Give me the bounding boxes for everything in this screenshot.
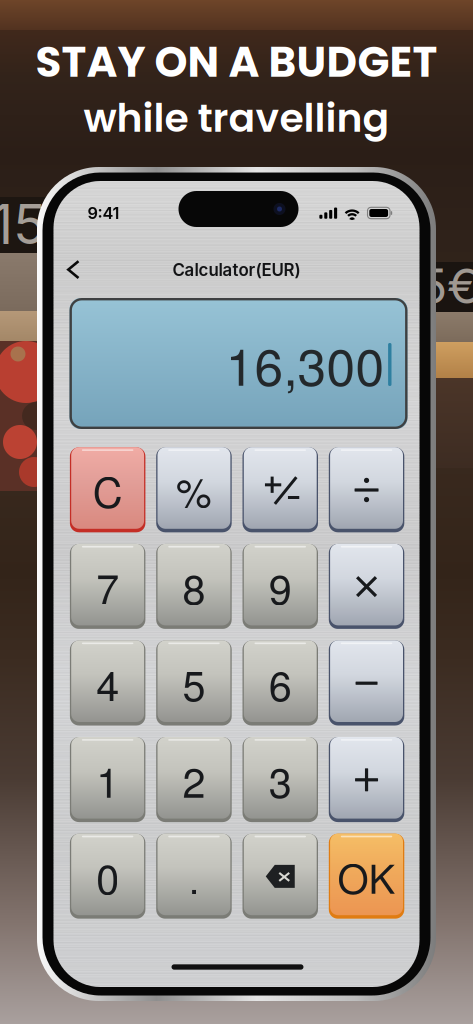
button[interactable]: Decimal point bbox=[156, 833, 232, 918]
staticText: 16,300 bbox=[226, 327, 385, 400]
staticText: Calculator(EUR) bbox=[172, 260, 300, 280]
button[interactable]: One bbox=[70, 736, 145, 821]
staticText: 7 bbox=[96, 557, 119, 616]
button[interactable]: Zero bbox=[70, 833, 145, 918]
button[interactable]: Seven bbox=[70, 543, 145, 628]
staticText: 4 bbox=[96, 654, 119, 713]
button[interactable]: Six bbox=[242, 640, 318, 725]
button[interactable]: OK bbox=[329, 833, 404, 918]
button[interactable]: Back bbox=[53, 249, 93, 291]
staticText: 8 bbox=[182, 557, 205, 616]
button[interactable]: Plus minus bbox=[242, 446, 318, 531]
staticText: 2 bbox=[182, 750, 205, 809]
staticText: 5 bbox=[182, 654, 205, 713]
staticText: 6 bbox=[269, 654, 292, 713]
staticText: 1 bbox=[96, 750, 119, 809]
button[interactable]: Clear bbox=[70, 446, 145, 531]
button[interactable]: Nine bbox=[242, 543, 318, 628]
button[interactable]: Four bbox=[70, 640, 145, 725]
button[interactable]: Five bbox=[156, 640, 232, 725]
staticText: 5€ bbox=[418, 257, 473, 315]
button[interactable]: Divide bbox=[329, 446, 404, 531]
staticText: while travelling bbox=[83, 90, 389, 146]
button[interactable]: Three bbox=[242, 736, 318, 821]
staticText: OK bbox=[337, 848, 395, 905]
staticText: 15 bbox=[0, 191, 46, 257]
staticText: 9:41 bbox=[87, 203, 119, 223]
staticText: STAY ON A BUDGET bbox=[35, 33, 437, 91]
staticText: 3 bbox=[269, 750, 292, 809]
button[interactable]: Plus bbox=[329, 736, 404, 821]
button[interactable]: Percent bbox=[156, 446, 232, 531]
staticText: 9 bbox=[269, 557, 292, 616]
button[interactable]: Multiply bbox=[329, 543, 404, 628]
staticText: C bbox=[93, 460, 123, 520]
staticText: % bbox=[176, 461, 212, 519]
button[interactable]: Minus bbox=[329, 640, 404, 725]
button[interactable]: Backspace bbox=[242, 833, 318, 918]
button[interactable]: Eight bbox=[156, 543, 232, 628]
staticText: . bbox=[188, 847, 199, 906]
staticText: 0 bbox=[96, 847, 119, 906]
button[interactable]: Two bbox=[156, 736, 232, 821]
